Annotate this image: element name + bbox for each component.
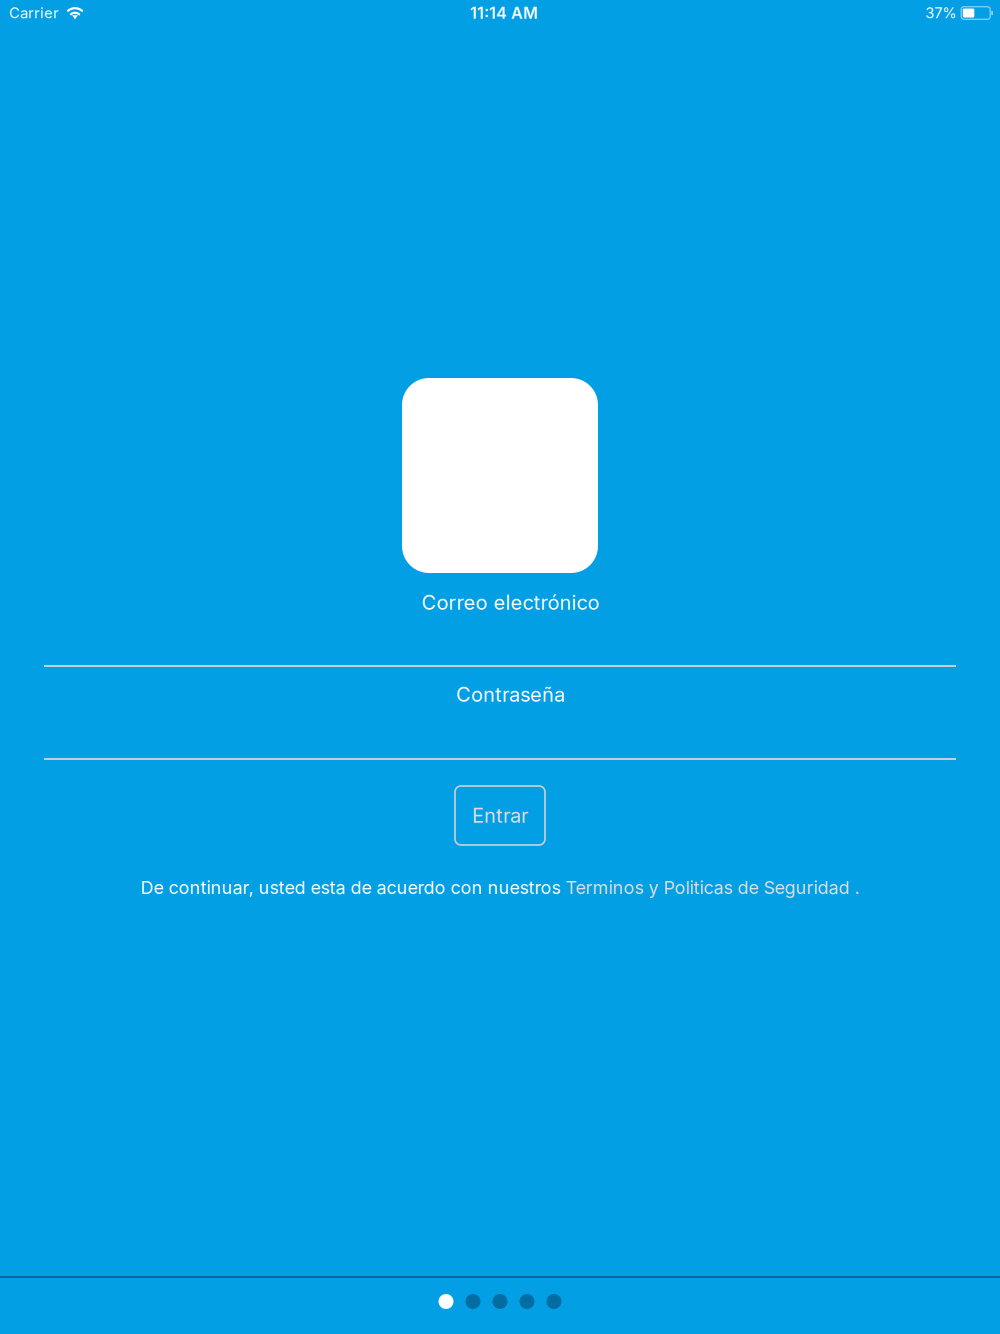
staticText: Correo electrónico [421,590,599,615]
staticText: Carrier [9,4,59,22]
staticText: 11:14 AM [470,3,538,23]
button[interactable]: Entrar [455,786,545,845]
button[interactable]: Page 1, current page [438,1294,453,1309]
staticText: De continuar, usted esta de acuerdo con … [140,877,565,898]
button[interactable]: Correo electrónico [411,591,589,614]
button[interactable]: Page 2 [465,1294,480,1309]
button[interactable]: Page 3 [492,1294,507,1309]
button[interactable]: Page 4 [519,1294,534,1309]
button[interactable]: Terminos y Politicas de Seguridad . [565,877,859,898]
staticText: Entrar [472,803,528,828]
staticText: 37% [925,4,956,22]
staticText: Contraseña [456,682,565,707]
button[interactable]: Contraseña [445,683,554,706]
button[interactable]: Page 5 [546,1294,561,1309]
staticText: Terminos y Politicas de Seguridad . [565,877,859,898]
